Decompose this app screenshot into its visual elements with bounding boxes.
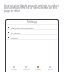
- staticText: More: [48, 68, 53, 71]
- staticText: Account: [11, 31, 21, 34]
- button[interactable]: General information: [6, 25, 58, 29]
- staticText: Home: [11, 68, 17, 71]
- staticText: Browse: [23, 68, 30, 71]
- button[interactable]: More: [44, 66, 56, 71]
- button[interactable]: Browse: [20, 66, 32, 71]
- button[interactable]: Home: [8, 66, 20, 71]
- button[interactable]: Alerts: [32, 66, 44, 71]
- staticText: Settings: [27, 20, 37, 24]
- button[interactable]: Account: [6, 30, 58, 34]
- button[interactable]: About: [6, 35, 58, 39]
- staticText: Alerts: [35, 68, 41, 71]
- staticText: About: [11, 36, 18, 39]
- staticText: General information: [11, 26, 34, 29]
- staticText: Instruct your Apple account settings to …: [4, 4, 59, 13]
